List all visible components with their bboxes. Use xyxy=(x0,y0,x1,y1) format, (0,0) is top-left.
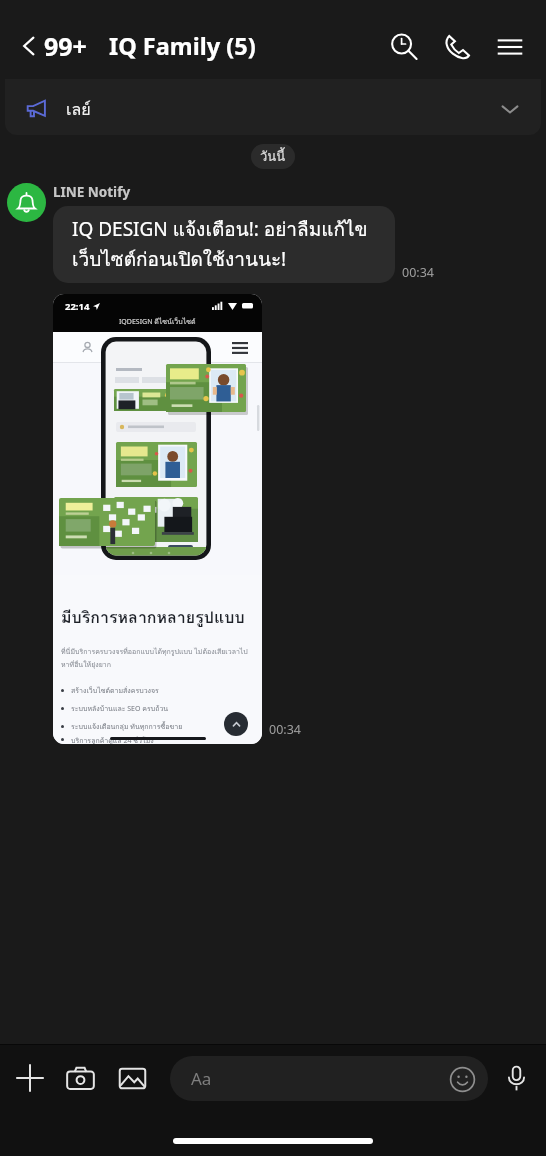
button[interactable]: Scroll to top xyxy=(224,712,248,736)
staticText: 99+ xyxy=(44,29,87,63)
staticText: วันนี้ xyxy=(260,146,286,167)
button[interactable]: 99+ xyxy=(12,19,93,73)
staticText: มีบริการหลากหลายรูปแบบ xyxy=(61,605,245,630)
staticText: IQ Family (5) xyxy=(109,30,256,62)
staticText: 22:14 xyxy=(65,300,90,313)
staticText: 00:34 xyxy=(269,721,301,738)
button[interactable]: Aa xyxy=(170,1056,488,1101)
staticText: เลย์ xyxy=(66,97,91,122)
staticText: ระบบแจ้งเตือนกลุ่ม ทันทุกการซื้อขาย xyxy=(71,721,183,732)
button[interactable]: Shared image: IQ DESIGN website screensh… xyxy=(53,294,262,744)
button[interactable]: Emoji xyxy=(446,1063,478,1095)
staticText: ระบบหลังบ้านและ SEO ครบถ้วน xyxy=(71,703,169,714)
staticText: IQDESIGN ดีไซน์เว็บไซต์ xyxy=(119,316,196,327)
button[interactable]: Add xyxy=(3,1051,57,1105)
button[interactable]: Photo gallery xyxy=(104,1050,160,1106)
staticText: 00:34 xyxy=(402,264,434,281)
button[interactable]: Search xyxy=(377,20,430,73)
button[interactable]: IQ DESIGN แจ้งเตือน!: อย่าลืมแก้ไข เว็บไ… xyxy=(53,206,395,283)
button[interactable]: Voice message xyxy=(493,1055,539,1101)
button[interactable]: LINE Notify avatar xyxy=(7,183,46,222)
button[interactable]: Camera xyxy=(57,1055,104,1102)
staticText: สร้างเว็บไซต์ตามสั่งครบวงจร xyxy=(71,685,159,696)
button[interactable]: Call xyxy=(430,20,483,73)
staticText: ที่นี่มีบริการครบวงจรที่ออกแบบได้ทุกรูปแ… xyxy=(61,646,254,670)
button[interactable]: เลย์ xyxy=(5,79,541,135)
staticText: LINE Notify xyxy=(53,183,131,201)
staticText: IQ DESIGN แจ้งเตือน!: อย่าลืมแก้ไข เว็บไ… xyxy=(72,214,368,274)
button[interactable]: Menu xyxy=(483,20,536,73)
staticText: Aa xyxy=(191,1067,212,1090)
staticText: บริการลูกค้าดูแล 24 ชั่วโมง xyxy=(71,735,154,744)
